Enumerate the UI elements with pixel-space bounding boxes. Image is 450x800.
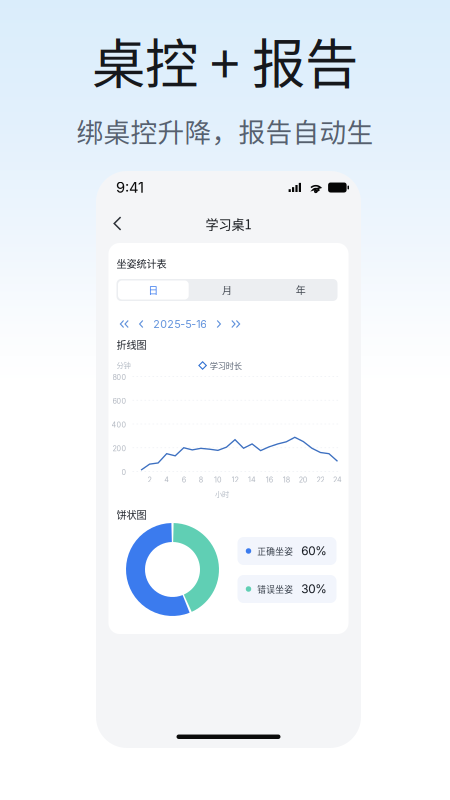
staticText: 正确坐姿 <box>257 545 293 557</box>
staticText: 年 <box>296 283 306 297</box>
button[interactable]: 年 <box>264 279 337 301</box>
staticText: 饼状图 <box>116 507 146 522</box>
staticText: 22 <box>316 475 324 484</box>
staticText: 2 <box>148 475 152 484</box>
staticText: 学习时长 <box>210 359 242 371</box>
staticText: 9:41 <box>116 179 144 196</box>
staticText: 8 <box>199 475 203 484</box>
staticText: 14 <box>248 475 256 484</box>
button[interactable]: Previous period <box>116 317 133 331</box>
staticText: 小时 <box>215 488 229 499</box>
button[interactable]: Next day <box>213 317 225 331</box>
staticText: 60% <box>301 544 327 558</box>
staticText: 错误坐姿 <box>257 583 293 595</box>
button[interactable]: 月 <box>190 279 264 301</box>
staticText: 月 <box>222 283 232 297</box>
button[interactable]: 错误坐姿 <box>237 575 336 603</box>
staticText: 30% <box>301 582 327 596</box>
staticText: 20 <box>299 475 308 484</box>
staticText: 绑桌控升降，报告自动生 <box>76 111 373 150</box>
button[interactable]: Previous day <box>133 317 147 331</box>
staticText: 2025-5-16 <box>153 317 207 330</box>
staticText: 18 <box>283 475 290 484</box>
staticText: 12 <box>231 475 238 484</box>
staticText: 分钟 <box>116 359 130 370</box>
staticText: 折线图 <box>116 337 146 352</box>
button[interactable]: 正确坐姿 <box>237 537 336 565</box>
staticText: 10 <box>214 475 222 484</box>
staticText: 600 <box>112 397 126 405</box>
staticText: 0 <box>121 468 126 477</box>
button[interactable]: 日 <box>116 279 190 301</box>
button[interactable]: Back <box>104 209 131 238</box>
staticText: 400 <box>111 420 126 429</box>
button[interactable]: Next period <box>225 317 244 331</box>
staticText: 16 <box>266 475 273 484</box>
staticText: 6 <box>182 475 186 484</box>
staticText: 日 <box>148 283 158 297</box>
staticText: 4 <box>164 475 169 484</box>
staticText: 学习桌1 <box>205 214 251 233</box>
staticText: 800 <box>112 373 126 382</box>
staticText: 桌控 + 报告 <box>92 22 358 99</box>
staticText: 200 <box>112 444 126 453</box>
staticText: 坐姿统计表 <box>116 256 166 271</box>
staticText: 24 <box>333 475 342 484</box>
